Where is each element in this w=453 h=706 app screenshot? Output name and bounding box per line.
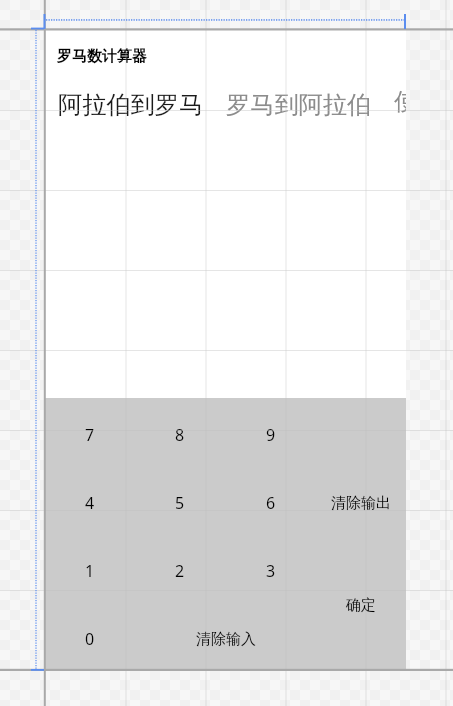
button[interactable]: 清除输出 xyxy=(316,469,406,537)
button[interactable]: 4 xyxy=(45,469,135,537)
button[interactable]: 罗马数计算器 xyxy=(57,47,147,66)
button[interactable]: 使用说明 xyxy=(394,87,406,123)
button[interactable]: 0 xyxy=(45,605,135,673)
staticText: 2 xyxy=(175,560,185,582)
staticText: 4 xyxy=(85,492,95,514)
button[interactable]: 9 xyxy=(226,401,316,469)
staticText: 罗马数计算器 xyxy=(57,47,147,66)
staticText: 9 xyxy=(266,424,276,446)
button[interactable]: 5 xyxy=(135,469,225,537)
staticText: 罗马到阿拉伯 xyxy=(226,90,372,120)
button[interactable]: 2 xyxy=(135,537,225,605)
staticText: 清除输入 xyxy=(196,630,256,649)
staticText: 阿拉伯到罗马 xyxy=(58,90,204,120)
staticText: 7 xyxy=(85,424,95,446)
button[interactable]: 1 xyxy=(45,537,135,605)
staticText: 5 xyxy=(175,492,185,514)
button[interactable]: 阿拉伯到罗马 xyxy=(58,90,204,120)
button[interactable]: 3 xyxy=(226,537,316,605)
button[interactable]: 6 xyxy=(226,469,316,537)
staticText: 8 xyxy=(175,424,185,446)
button[interactable]: 7 xyxy=(45,401,135,469)
button[interactable]: 确定 xyxy=(316,537,406,673)
button[interactable]: 清除输入 xyxy=(135,605,316,673)
button[interactable]: 8 xyxy=(135,401,225,469)
staticText: 0 xyxy=(85,628,95,650)
staticText: 清除输出 xyxy=(331,494,391,513)
staticText: 1 xyxy=(85,560,95,582)
staticText: 6 xyxy=(266,492,276,514)
staticText: 使用说明 xyxy=(394,87,406,123)
staticText: 3 xyxy=(266,560,276,582)
staticText: 确定 xyxy=(346,596,376,615)
button[interactable]: 罗马到阿拉伯 xyxy=(226,90,372,120)
